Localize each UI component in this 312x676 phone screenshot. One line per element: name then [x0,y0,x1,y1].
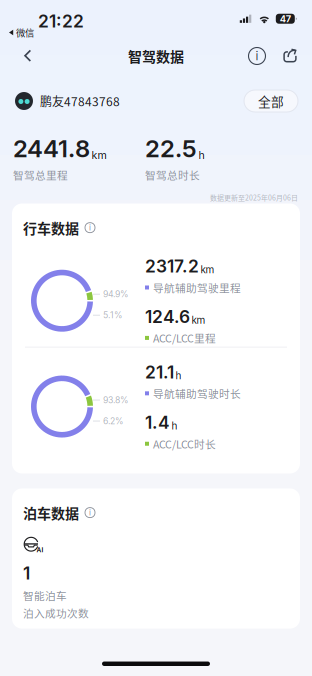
staticText: 导航辅助驾驶里程 [153,280,241,295]
staticText: 智驾数据 [128,46,184,66]
staticText: h [171,420,177,432]
staticText: 智驾总时长 [145,167,200,182]
staticText: 微信 [16,26,34,39]
staticText: 5.1% [103,310,123,320]
staticText: i [255,49,258,63]
button[interactable]: 全部 [244,90,298,112]
staticText: 行车数据 [23,217,79,238]
staticText: 124.6 [145,306,190,327]
staticText: AI [36,546,43,554]
staticText: 47 [280,13,291,24]
staticText: h [175,369,181,382]
staticText: 泊入成功次数 [23,605,89,621]
staticText: 1 [23,563,30,584]
staticText: 智能泊车 [23,588,67,603]
staticText: 21.1 [145,362,174,383]
staticText: 智驾总里程 [13,167,68,182]
button[interactable]: Share [274,40,306,72]
staticText: 1.4 [145,412,170,433]
staticText: 2441.8 [13,134,90,163]
staticText: 数据更新至2025年06月06日 [210,192,298,202]
staticText: km [191,314,205,326]
staticText: 导航辅助驾驶时长 [153,386,241,401]
staticText: 泊车数据 [23,502,79,523]
staticText: ACC/LCC里程 [153,330,216,346]
staticText: km [200,264,214,276]
button[interactable]: About 泊车数据 [84,507,96,519]
staticText: 6.2% [103,416,124,426]
staticText: km [91,149,106,161]
staticText: h [198,149,204,161]
button[interactable]: Info [240,40,274,72]
staticText: i [89,223,91,232]
staticText: 22.5 [145,134,197,163]
button[interactable]: About 行车数据 [84,222,96,234]
staticText: 全部 [258,92,284,110]
staticText: i [89,508,91,517]
staticText: 21:22 [38,11,84,32]
staticText: ACC/LCC时长 [153,436,216,451]
staticText: 2317.2 [145,256,199,277]
staticText: 93.8% [103,395,129,405]
staticText: 94.9% [103,289,129,299]
staticText: 鹏友47843768 [40,92,120,110]
button[interactable]: Back [11,40,45,72]
